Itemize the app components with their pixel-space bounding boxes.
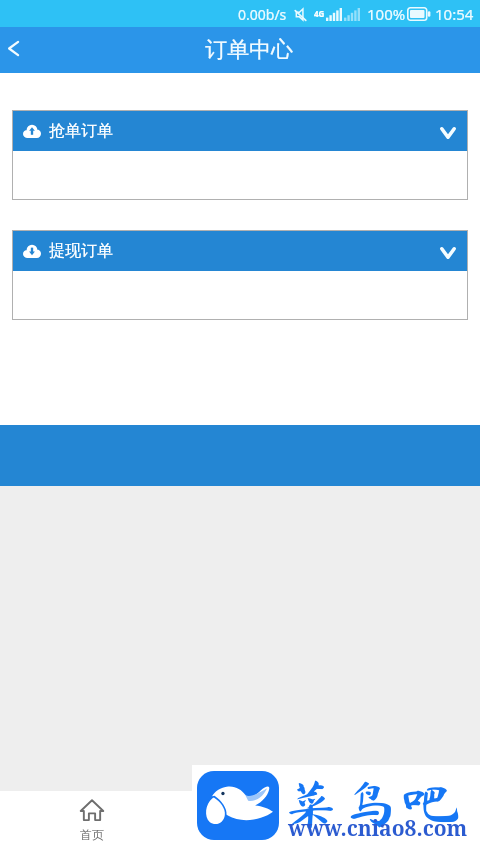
button[interactable]: 首页 xyxy=(62,799,122,842)
button[interactable]: 抢单订单 xyxy=(12,110,468,200)
staticText: 订单中心 xyxy=(205,36,293,64)
staticText: 100% xyxy=(367,4,406,24)
staticText: 10:54 xyxy=(435,4,474,24)
staticText: 首页 xyxy=(80,827,104,842)
staticText: 0.00b/s xyxy=(238,5,287,24)
staticText: 4G xyxy=(314,8,325,19)
staticText: www.cniao8.com xyxy=(288,814,468,843)
button[interactable]: 提现订单 xyxy=(12,230,468,320)
staticText: 提现订单 xyxy=(49,241,113,261)
staticText: 抢单订单 xyxy=(49,121,113,141)
button[interactable]: Back xyxy=(0,27,27,73)
staticText: 菜鸟吧 xyxy=(281,778,461,828)
